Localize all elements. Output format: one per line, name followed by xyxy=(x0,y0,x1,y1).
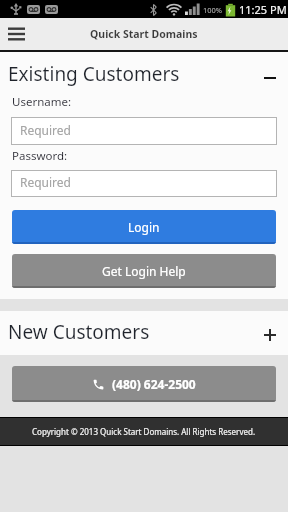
staticText: Copyright © 2013 Quick Start Domains. Al… xyxy=(32,426,256,437)
button[interactable]: Required xyxy=(11,117,277,145)
button[interactable]: Existing Customers xyxy=(8,52,278,90)
staticText: Quick Start Domains xyxy=(90,27,198,41)
staticText: Required xyxy=(20,122,71,138)
staticText: Password: xyxy=(12,148,68,164)
staticText: (480) 624-2500 xyxy=(112,376,196,392)
staticText: New Customers xyxy=(8,319,150,345)
staticText: 100% xyxy=(203,5,223,15)
button[interactable]: Login xyxy=(12,210,276,244)
button[interactable] xyxy=(8,27,25,41)
staticText: Username: xyxy=(12,94,72,110)
staticText: Required xyxy=(20,174,71,190)
staticText: Login xyxy=(128,219,160,235)
staticText: 11:25 PM xyxy=(239,2,287,17)
button[interactable]: Required xyxy=(11,170,277,197)
button[interactable]: New Customers xyxy=(8,311,278,355)
button[interactable]: (480) 624-2500 xyxy=(12,366,276,402)
staticText: Existing Customers xyxy=(8,61,180,87)
staticText: Get Login Help xyxy=(102,263,186,279)
button[interactable]: Get Login Help xyxy=(12,254,276,288)
